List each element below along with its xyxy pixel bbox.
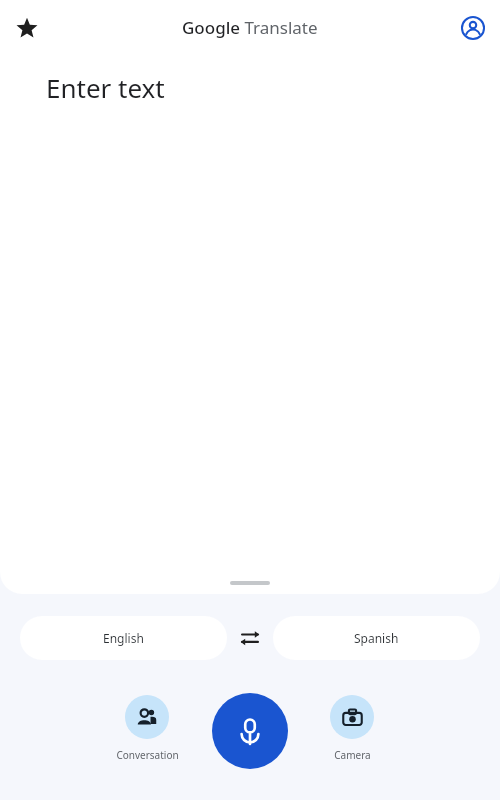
button[interactable]: English xyxy=(20,616,227,660)
staticText: Enter text xyxy=(46,70,165,105)
staticText: Spanish xyxy=(354,630,399,646)
staticText: Camera xyxy=(334,748,371,762)
button[interactable]: Conversation xyxy=(102,695,192,762)
button[interactable]: Saved xyxy=(7,8,47,48)
button[interactable]: Voice input xyxy=(212,693,288,769)
button[interactable]: Account xyxy=(453,8,493,48)
button[interactable]: Swap languages xyxy=(227,615,273,661)
button[interactable]: Camera xyxy=(307,695,397,762)
staticText: Conversation xyxy=(116,748,179,762)
staticText: English xyxy=(103,630,144,646)
button[interactable]: Spanish xyxy=(273,616,480,660)
button[interactable]: Enter text xyxy=(46,70,454,105)
staticText: Google Translate xyxy=(182,16,318,39)
